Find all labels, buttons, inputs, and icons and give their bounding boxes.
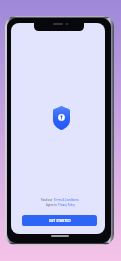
button[interactable]: Privacy Policy [58, 203, 75, 207]
button[interactable]: GET STARTED [22, 215, 97, 226]
staticText: GET STARTED [49, 218, 71, 223]
staticText: Read our [41, 198, 54, 202]
staticText: Agree to [46, 203, 58, 207]
button[interactable]: Terms & Conditions [54, 198, 79, 202]
other: Security shield [53, 106, 70, 130]
